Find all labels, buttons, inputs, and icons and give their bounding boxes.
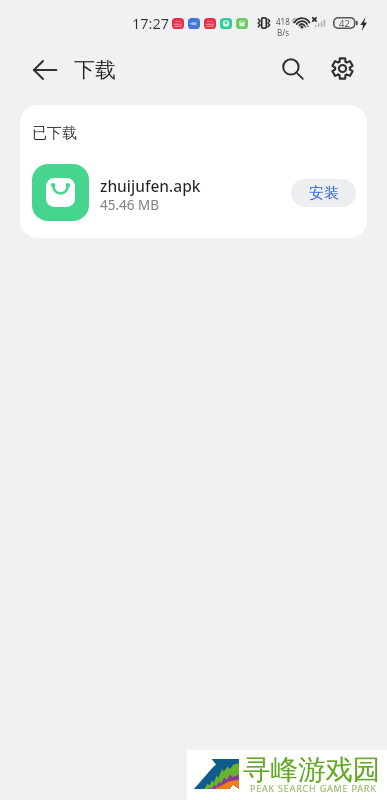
- staticText: 下载: [74, 57, 116, 83]
- staticText: B/s: [277, 27, 290, 38]
- staticText: 17:27: [132, 13, 170, 33]
- staticText: 已下载: [32, 124, 77, 143]
- staticText: 42: [339, 17, 350, 30]
- staticText: 安装: [309, 184, 339, 203]
- staticText: 6: [292, 15, 297, 25]
- button[interactable]: Settings: [322, 48, 363, 89]
- staticText: PEAK SEARCH GAME PARK: [250, 782, 377, 794]
- button[interactable]: 安装: [291, 179, 356, 207]
- button[interactable]: Back: [24, 49, 65, 90]
- staticText: 寻峰游戏园: [243, 753, 381, 788]
- staticText: zhuijufen.apk: [100, 175, 201, 196]
- staticText: 45.46 MB: [100, 196, 160, 214]
- button[interactable]: Search: [272, 48, 314, 90]
- staticText: 418: [276, 16, 290, 27]
